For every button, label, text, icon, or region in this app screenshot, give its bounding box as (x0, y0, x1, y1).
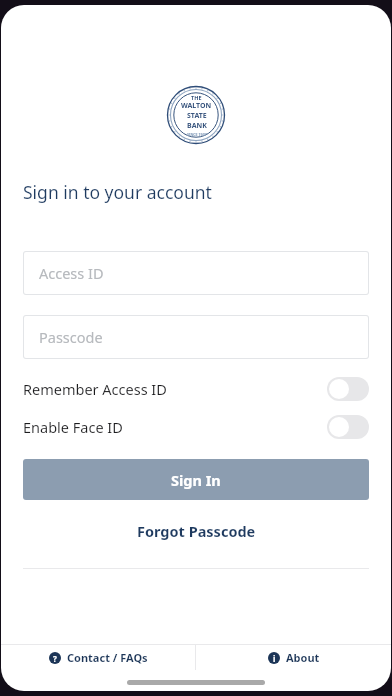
button[interactable]: Enable Face ID (1, 410, 391, 443)
staticText: Access ID (39, 263, 104, 283)
staticText: Remember Access ID (23, 379, 167, 399)
staticText: i (273, 653, 276, 664)
staticText: SINCE 1907 (187, 132, 207, 137)
staticText: Contact / FAQs (67, 650, 148, 665)
button[interactable]: Forgot Passcode (1, 521, 391, 541)
staticText: About (286, 650, 320, 665)
other: Home indicator (127, 680, 265, 685)
staticText: THE (191, 94, 202, 101)
button[interactable]: Sign In (23, 459, 369, 500)
button[interactable]: Passcode (24, 316, 368, 358)
staticText: WALTON (181, 101, 212, 111)
staticText: Sign In (171, 470, 221, 490)
staticText: Passcode (39, 327, 103, 347)
staticText: Forgot Passcode (137, 521, 256, 541)
button[interactable]: Access ID (24, 252, 368, 294)
button[interactable]: Remember Access ID (1, 372, 391, 405)
staticText: STATE (187, 111, 207, 121)
staticText: Sign in to your account (23, 180, 212, 204)
button[interactable]: ? (1, 645, 195, 670)
staticText: BANK (187, 121, 207, 131)
staticText: ? (53, 653, 57, 664)
staticText: Enable Face ID (23, 417, 123, 437)
button[interactable]: i (196, 645, 391, 670)
